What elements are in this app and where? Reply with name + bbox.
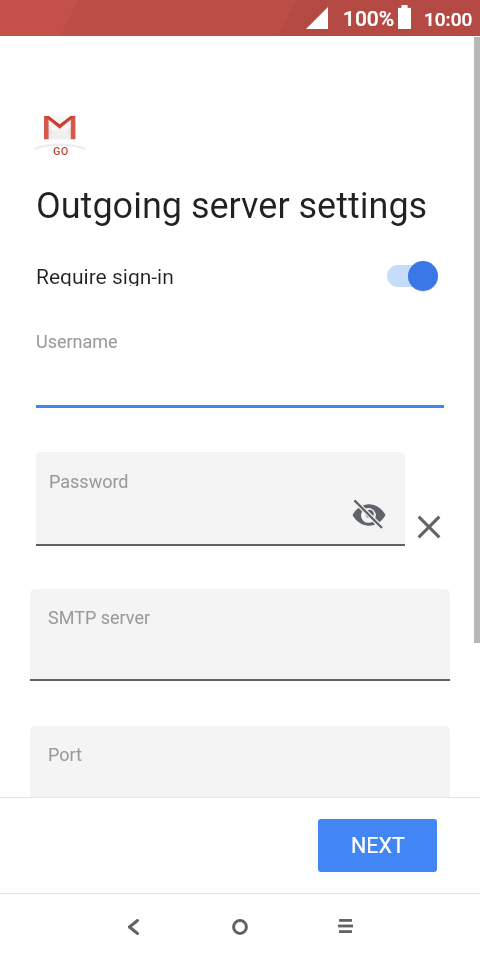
button[interactable] (30, 589, 450, 681)
staticText: 10:00 (424, 8, 473, 30)
staticText: GO (53, 145, 69, 158)
button[interactable]: Clear (411, 509, 447, 545)
button[interactable]: NEXT (318, 819, 437, 872)
staticText: Password (49, 471, 129, 492)
button[interactable]: Back (101, 894, 165, 960)
staticText: SMTP server (48, 607, 151, 628)
staticText: 100% (343, 7, 395, 32)
button[interactable] (36, 452, 405, 546)
staticText: Username (36, 331, 118, 352)
button[interactable]: Require sign-in (383, 258, 441, 294)
button[interactable]: Recent apps (313, 893, 377, 959)
button[interactable]: Show password (351, 497, 387, 533)
button[interactable]: Home (208, 894, 272, 960)
staticText: NEXT (351, 833, 405, 858)
staticText: Require sign-in (36, 265, 174, 286)
staticText: Outgoing server settings (36, 185, 428, 227)
staticText: Port (48, 744, 82, 765)
button[interactable]: Port (30, 726, 450, 797)
